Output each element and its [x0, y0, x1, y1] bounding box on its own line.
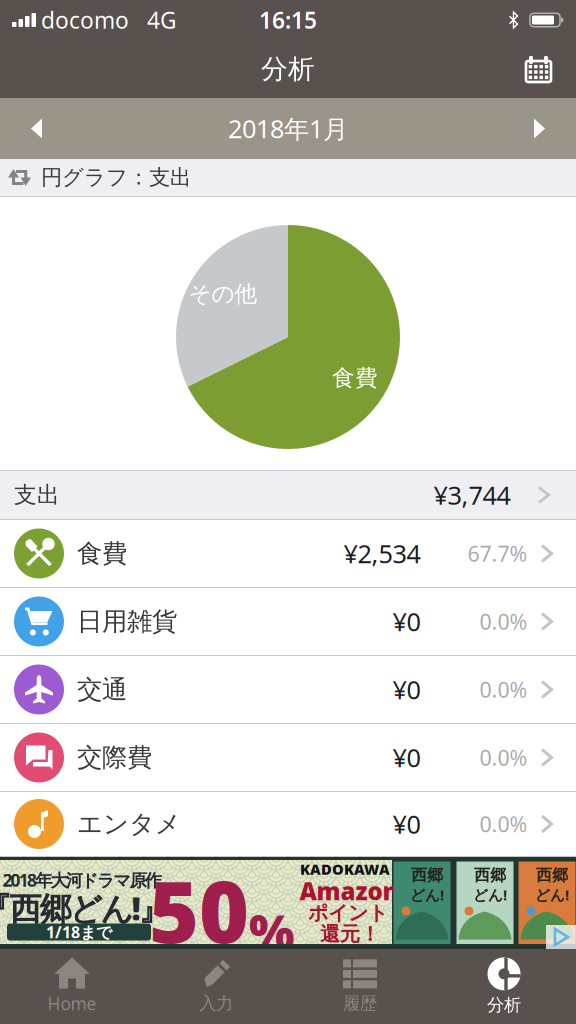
- staticText: KADOKAWA: [300, 859, 390, 879]
- button[interactable]: 翌月: [534, 118, 576, 138]
- staticText: 0.0%: [479, 675, 527, 704]
- staticText: 0.0%: [479, 607, 527, 636]
- button[interactable]: 食費: [0, 520, 576, 588]
- staticText: 日用雑貨: [77, 606, 177, 637]
- button[interactable]: 日用雑貨: [0, 588, 576, 656]
- staticText: %: [249, 899, 295, 963]
- staticText: 『西郷どん!』: [0, 887, 170, 929]
- staticText: 0.0%: [479, 743, 527, 772]
- staticText: 分析: [261, 53, 315, 85]
- staticText: docomo: [41, 5, 129, 35]
- button[interactable]: 広告: [0, 857, 576, 949]
- staticText: 交通: [77, 674, 127, 705]
- staticText: 入力: [199, 993, 233, 1014]
- button[interactable]: 支出: [0, 470, 576, 520]
- staticText: 1/18まで: [46, 921, 112, 943]
- staticText: ポイント: [308, 901, 388, 925]
- button[interactable]: エンタメ: [0, 792, 576, 857]
- button[interactable]: Home: [0, 951, 144, 1021]
- staticText: エンタメ: [77, 808, 181, 839]
- staticText: 67.7%: [467, 539, 527, 568]
- staticText: 食費: [77, 538, 127, 569]
- staticText: 4G: [147, 5, 177, 35]
- staticText: Amazon: [299, 875, 398, 907]
- button[interactable]: 交通: [0, 656, 576, 724]
- staticText: ¥2,534: [343, 537, 420, 570]
- staticText: その他: [188, 280, 257, 308]
- button[interactable]: カレンダー: [525, 55, 576, 82]
- staticText: ¥3,744: [433, 478, 510, 512]
- staticText: ¥0: [392, 741, 420, 774]
- staticText: 円グラフ：支出: [41, 164, 191, 191]
- staticText: 2018年大河ドラマ原作: [2, 868, 162, 891]
- staticText: 履歴: [343, 993, 377, 1014]
- staticText: 還元！: [320, 922, 380, 946]
- button[interactable]: 分析: [432, 951, 576, 1021]
- staticText: 西郷: [411, 865, 443, 885]
- staticText: ¥0: [392, 807, 420, 841]
- button[interactable]: 前月: [0, 118, 42, 138]
- staticText: どん!: [535, 885, 569, 905]
- staticText: どん!: [410, 885, 444, 905]
- staticText: 分析: [487, 994, 521, 1016]
- staticText: 西郷: [536, 865, 568, 885]
- staticText: 西郷: [474, 865, 506, 885]
- staticText: ¥0: [392, 605, 420, 638]
- button[interactable]: 入力: [144, 951, 288, 1021]
- staticText: 16:15: [259, 5, 317, 35]
- staticText: 50: [149, 853, 249, 967]
- button[interactable]: 交際費: [0, 724, 576, 792]
- staticText: ¥0: [392, 673, 420, 706]
- staticText: どん!: [473, 885, 507, 905]
- staticText: 支出: [14, 481, 60, 509]
- staticText: 食費: [332, 364, 378, 392]
- staticText: 交際費: [77, 742, 152, 773]
- staticText: 0.0%: [479, 810, 527, 838]
- staticText: Home: [47, 992, 96, 1015]
- staticText: 2018年1月: [228, 112, 348, 145]
- button[interactable]: 履歴: [288, 951, 432, 1021]
